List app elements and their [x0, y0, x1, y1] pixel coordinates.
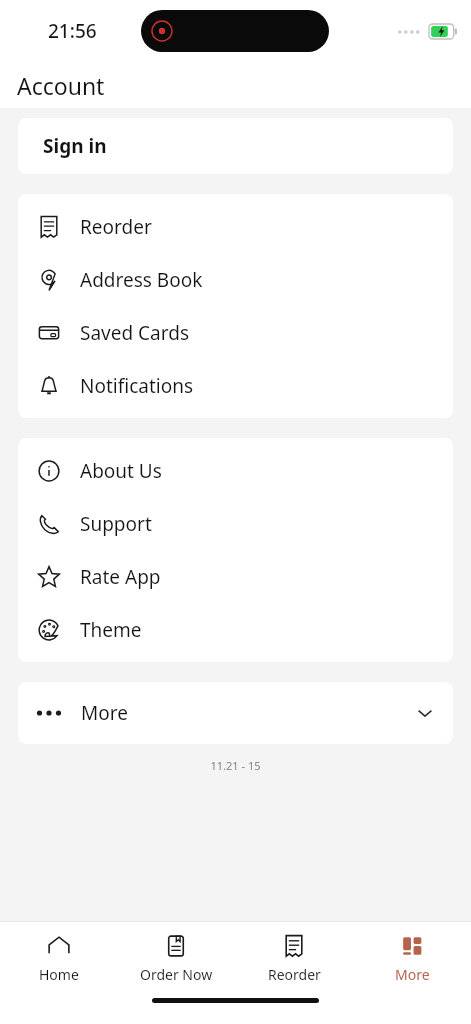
- staticText: More: [81, 700, 128, 726]
- staticText: 11.21 - 15: [0, 758, 471, 773]
- staticText: About Us: [80, 458, 162, 484]
- button[interactable]: Saved Cards: [18, 306, 453, 359]
- staticText: Notifications: [80, 373, 194, 399]
- staticText: Home: [39, 965, 79, 984]
- staticText: Account: [17, 70, 105, 101]
- staticText: Saved Cards: [80, 320, 190, 346]
- button[interactable]: More: [18, 682, 453, 744]
- staticText: Sign in: [43, 133, 107, 159]
- staticText: Theme: [80, 617, 142, 643]
- button[interactable]: Notifications: [18, 359, 453, 412]
- button[interactable]: Support: [18, 497, 453, 550]
- button[interactable]: Reorder: [18, 200, 453, 253]
- staticText: 21:56: [48, 18, 97, 44]
- staticText: Reorder: [80, 214, 152, 240]
- button[interactable]: Address Book: [18, 253, 453, 306]
- staticText: Rate App: [80, 564, 161, 590]
- button[interactable]: Rate App: [18, 550, 453, 603]
- staticText: Reorder: [268, 965, 321, 984]
- button[interactable]: Sign in: [18, 118, 453, 174]
- staticText: Support: [80, 511, 152, 537]
- button[interactable]: Home: [0, 922, 117, 994]
- button[interactable]: Theme: [18, 603, 453, 656]
- staticText: Address Book: [80, 267, 203, 293]
- button[interactable]: Order Now: [117, 922, 235, 994]
- button[interactable]: More: [353, 922, 471, 994]
- staticText: Order Now: [140, 965, 213, 984]
- button[interactable]: Reorder: [235, 922, 353, 994]
- staticText: More: [395, 965, 430, 984]
- button[interactable]: About Us: [18, 444, 453, 497]
